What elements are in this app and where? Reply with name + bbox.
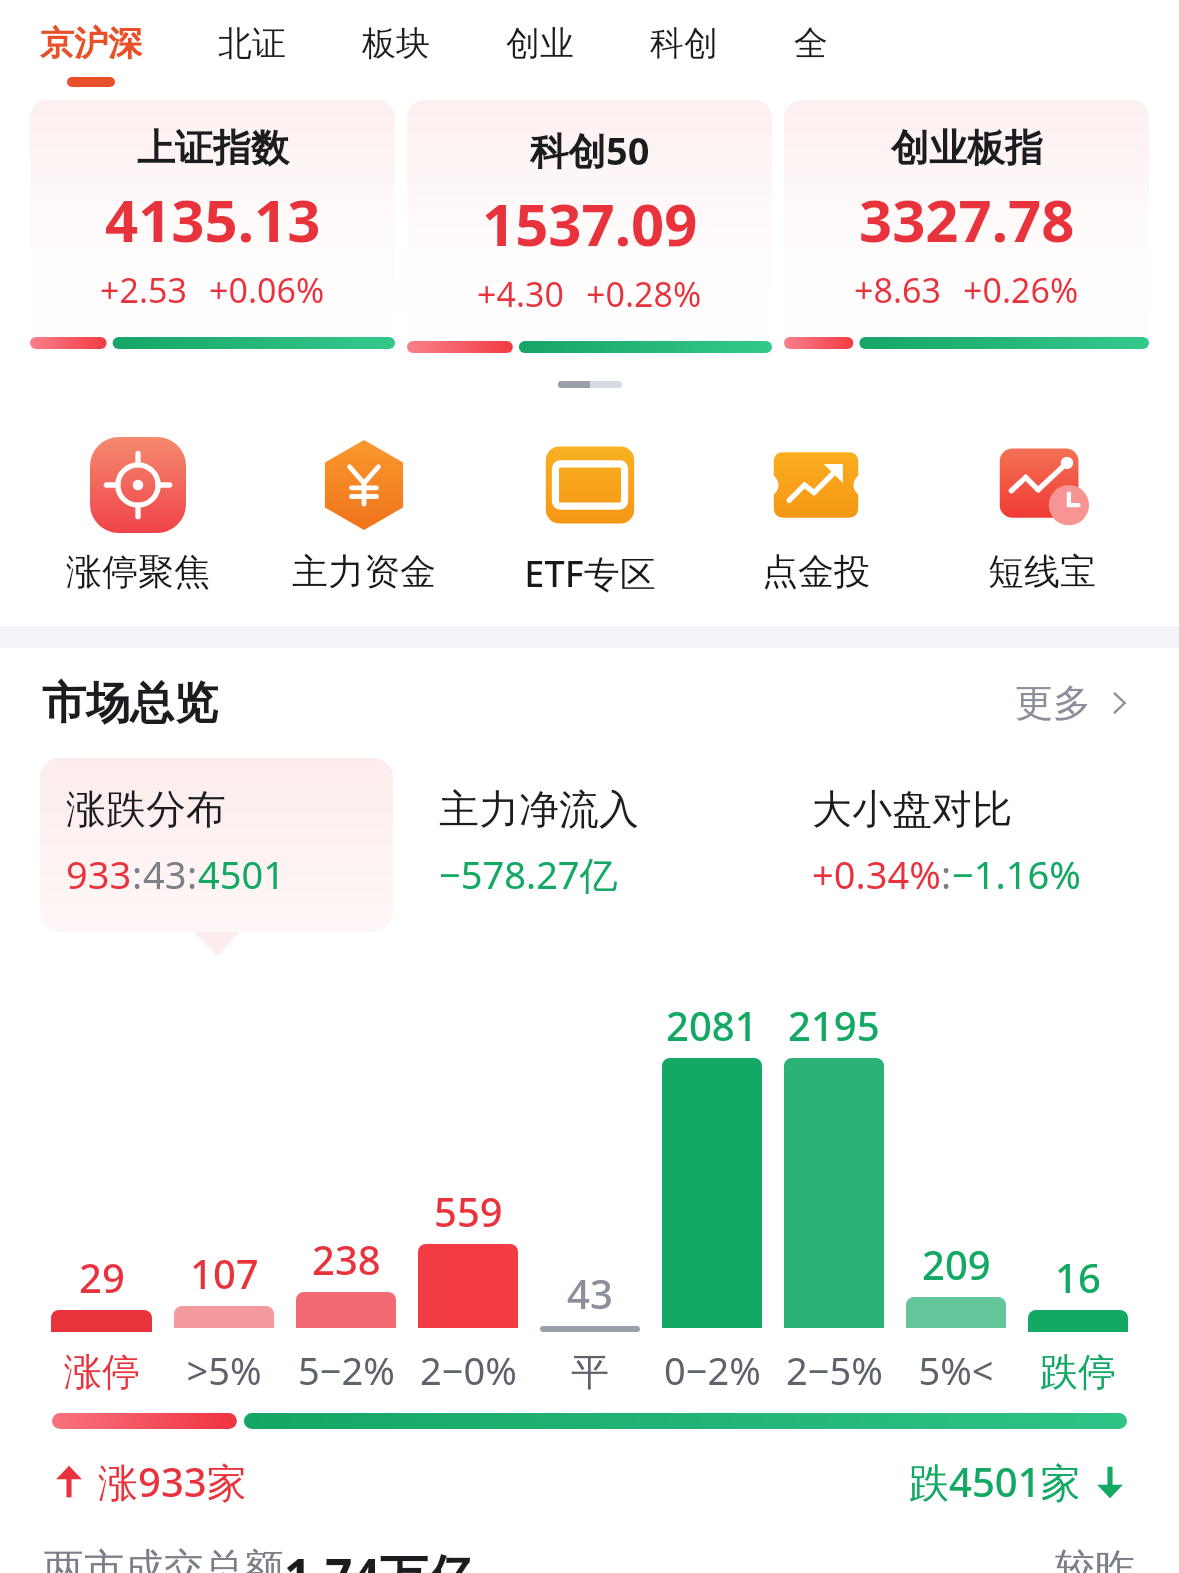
- button[interactable]: 107: [163, 998, 285, 1396]
- staticText: +4.30: [477, 271, 564, 317]
- staticText: 5%<: [918, 1344, 994, 1396]
- staticText: +0.06%: [209, 267, 325, 313]
- button[interactable]: 559: [407, 998, 529, 1396]
- button[interactable]: 短线宝: [929, 437, 1155, 594]
- other: Down: [1093, 1465, 1127, 1499]
- button[interactable]: 全: [790, 0, 832, 77]
- staticText: 较昨: [1055, 1543, 1135, 1573]
- staticText: −578.27亿: [439, 848, 618, 900]
- staticText: 跌4501家: [909, 1454, 1081, 1509]
- staticText: 2195: [788, 998, 880, 1052]
- staticText: +0.34%: [812, 848, 941, 900]
- staticText: 43: [567, 1266, 613, 1320]
- staticText: 4135.13: [105, 180, 321, 259]
- staticText: +2.53: [100, 267, 187, 313]
- staticText: 创业: [506, 22, 574, 65]
- button[interactable]: 43: [529, 1002, 651, 1396]
- button[interactable]: 209: [895, 998, 1017, 1396]
- staticText: 2081: [666, 998, 758, 1052]
- staticText: ETF专区: [524, 549, 656, 598]
- staticText: 107: [190, 1246, 259, 1300]
- staticText: 209: [922, 1237, 991, 1291]
- button[interactable]: 238: [285, 998, 407, 1396]
- staticText: 更多: [1015, 679, 1091, 727]
- button[interactable]: 科创: [646, 0, 722, 77]
- staticText: 1537.09: [482, 184, 698, 263]
- staticText: 平: [571, 1348, 609, 1396]
- staticText: 京沪深: [40, 22, 142, 65]
- button[interactable]: 涨停聚焦: [24, 437, 251, 594]
- staticText: >5%: [186, 1344, 262, 1396]
- staticText: 16: [1055, 1250, 1101, 1304]
- staticText: 主力净流入: [439, 784, 639, 834]
- button[interactable]: 16: [1017, 1002, 1139, 1396]
- staticText: 创业板指: [891, 124, 1043, 172]
- button[interactable]: 板块: [358, 0, 434, 77]
- button[interactable]: 更多: [1015, 679, 1137, 727]
- button[interactable]: 创业: [502, 0, 578, 77]
- button[interactable]: 涨跌分布: [40, 758, 393, 932]
- staticText: 大小盘对比: [812, 784, 1012, 834]
- staticText: 238: [312, 1232, 381, 1286]
- staticText: 全: [794, 22, 828, 65]
- staticText: 点金投: [762, 549, 870, 594]
- staticText: −1.16%: [952, 848, 1081, 900]
- staticText: 933: [66, 848, 132, 900]
- staticText: 两市成交总额: [44, 1543, 284, 1573]
- staticText: 2−5%: [786, 1344, 883, 1396]
- other: Up: [52, 1465, 86, 1499]
- button[interactable]: 2081: [651, 998, 773, 1396]
- button[interactable]: 大小盘对比: [786, 758, 1139, 932]
- staticText: 市场总览: [42, 676, 218, 731]
- staticText: 29: [79, 1250, 125, 1304]
- staticText: 科创: [650, 22, 718, 65]
- staticText: 板块: [362, 22, 430, 65]
- button[interactable]: 京沪深: [36, 0, 146, 87]
- staticText: 43: [143, 848, 187, 900]
- staticText: +0.28%: [586, 271, 702, 317]
- button[interactable]: 主力净流入: [413, 758, 766, 932]
- staticText: 短线宝: [988, 549, 1096, 594]
- button[interactable]: 主力资金: [251, 437, 477, 594]
- staticText: :: [187, 848, 198, 900]
- staticText: +0.26%: [963, 267, 1079, 313]
- button[interactable]: 上证指数: [30, 100, 395, 363]
- button[interactable]: 2195: [773, 998, 895, 1396]
- button[interactable]: 29: [40, 1002, 163, 1396]
- staticText: 北证: [218, 22, 286, 65]
- staticText: 0−2%: [664, 1344, 761, 1396]
- button[interactable]: ETF专区: [477, 437, 703, 598]
- staticText: +8.63: [854, 267, 941, 313]
- staticText: 主力资金: [292, 549, 436, 594]
- staticText: :: [132, 848, 143, 900]
- button[interactable]: 点金投: [703, 437, 929, 594]
- staticText: 涨停聚焦: [66, 549, 210, 594]
- staticText: 涨停: [64, 1348, 140, 1396]
- staticText: 1.74万亿: [284, 1543, 476, 1573]
- staticText: 4501: [198, 848, 285, 900]
- staticText: 跌停: [1040, 1348, 1116, 1396]
- staticText: 2−0%: [420, 1344, 517, 1396]
- staticText: 科创50: [530, 124, 650, 176]
- button[interactable]: 科创50: [407, 100, 772, 367]
- staticText: 5−2%: [298, 1344, 395, 1396]
- staticText: 涨跌分布: [66, 784, 226, 834]
- button[interactable]: 创业板指: [784, 100, 1149, 363]
- staticText: 3327.78: [859, 180, 1075, 259]
- staticText: 559: [434, 1184, 503, 1238]
- staticText: 上证指数: [137, 124, 289, 172]
- staticText: 涨933家: [98, 1454, 247, 1509]
- staticText: :: [941, 848, 952, 900]
- button[interactable]: 北证: [214, 0, 290, 77]
